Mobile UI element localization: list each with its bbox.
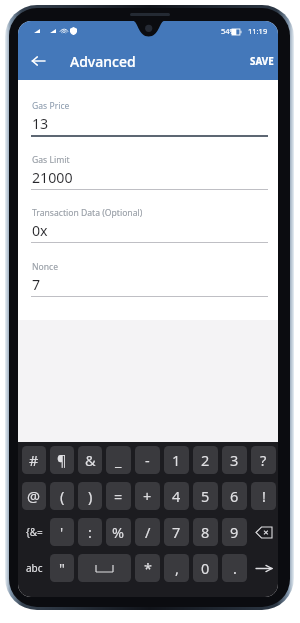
staticText: 11:19 [248,26,268,36]
staticText: + [143,486,152,506]
button[interactable]: ? [251,446,276,474]
button[interactable]: 3 [222,446,247,474]
staticText: & [85,450,96,470]
button[interactable]: 5 [193,482,218,510]
staticText: : [88,522,92,542]
staticText: - [145,450,150,470]
button[interactable]: % [106,518,131,546]
staticText: = [114,486,123,506]
button[interactable]: SAVE [245,46,278,77]
staticText: 3 [230,450,239,470]
staticText: Transaction Data (Optional) [32,207,143,219]
button[interactable] [251,554,276,582]
button[interactable]: = [106,482,131,510]
staticText: 6 [230,486,239,506]
button[interactable] [78,554,131,582]
button[interactable]: ) [78,482,102,510]
staticText: SAVE [250,55,274,68]
staticText: Advanced [70,52,136,71]
button[interactable]: ' [50,518,74,546]
button[interactable]: ¶ [50,446,74,474]
button[interactable]: & [78,446,102,474]
staticText: 8 [201,522,210,542]
staticText: 13 [32,114,49,133]
button[interactable]: Nonce [18,242,278,295]
staticText: / [145,522,151,542]
button[interactable]: * [135,554,160,582]
button[interactable]: 1 [164,446,189,474]
staticText: # [29,450,39,470]
button[interactable]: / [135,518,160,546]
button[interactable]: {&= [22,518,46,546]
staticText: 2 [201,450,210,470]
staticText: , [175,558,179,578]
staticText: 5 [201,486,210,506]
staticText: 4 [172,486,181,506]
button[interactable]: @ [22,482,46,510]
button[interactable]: Transaction Data (Optional) [18,188,278,241]
staticText: ) [88,486,93,506]
button[interactable]: . [222,554,247,582]
button[interactable]: 9 [222,518,247,546]
button[interactable]: - [135,446,160,474]
button[interactable]: , [164,554,189,582]
button[interactable]: _ [106,446,131,474]
button[interactable]: Back [22,45,54,77]
staticText: ' [60,522,64,542]
staticText: ( [60,486,65,506]
staticText: 7 [32,275,41,294]
staticText: 9 [230,522,239,542]
button[interactable]: 7 [164,518,189,546]
button[interactable]: 4 [164,482,189,510]
staticText: _ [115,450,122,470]
button[interactable]: 8 [193,518,218,546]
button[interactable]: : [78,518,102,546]
staticText: Nonce [32,261,59,273]
staticText: 0x [32,221,48,240]
button[interactable]: abc [22,554,46,582]
button[interactable]: ! [251,482,276,510]
staticText: 0 [201,558,210,578]
staticText: % [112,522,125,542]
staticText: Gas Price [32,100,70,112]
staticText: * [144,558,152,578]
staticText: ? [260,450,267,470]
staticText: 21000 [32,168,73,187]
staticText: " [59,558,65,578]
staticText: ! [262,486,266,506]
button[interactable]: " [50,554,74,582]
button[interactable]: 0 [193,554,218,582]
button[interactable]: 6 [222,482,247,510]
button[interactable]: 2 [193,446,218,474]
staticText: @ [27,486,41,506]
button[interactable]: Gas Price [18,81,278,134]
staticText: Gas Limit [32,154,70,166]
staticText: 7 [172,522,181,542]
button[interactable]: # [22,446,46,474]
button[interactable] [251,518,276,546]
staticText: ¶ [57,450,67,470]
staticText: abc [26,561,43,575]
button[interactable]: ( [50,482,74,510]
staticText: {&= [26,525,43,539]
button[interactable]: Gas Limit [18,135,278,188]
button[interactable]: + [135,482,160,510]
staticText: . [233,558,237,578]
staticText: 1 [172,450,181,470]
staticText: 54% [221,26,236,36]
